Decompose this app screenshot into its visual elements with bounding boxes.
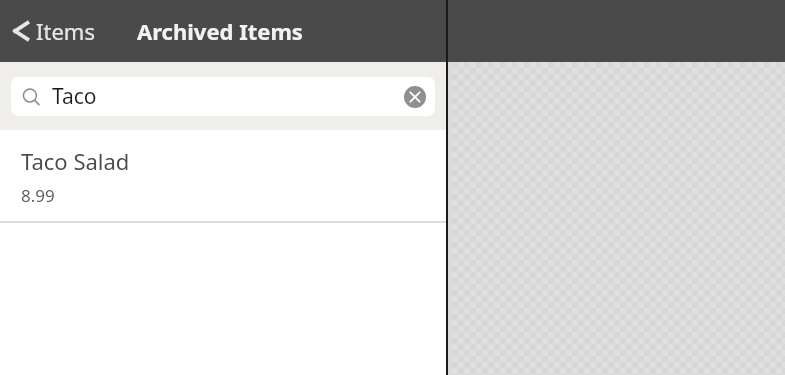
staticText: Items	[36, 16, 95, 46]
staticText: 8.99	[21, 184, 55, 207]
button[interactable]: Taco Salad	[0, 130, 446, 221]
button[interactable]: Back	[6, 10, 100, 52]
button[interactable]: Taco	[11, 77, 435, 116]
button[interactable]: Clear text	[404, 86, 426, 108]
staticText: Taco Salad	[21, 146, 130, 176]
staticText: Archived Items	[137, 16, 303, 46]
other: Back	[11, 17, 31, 45]
staticText: Taco	[52, 82, 404, 111]
